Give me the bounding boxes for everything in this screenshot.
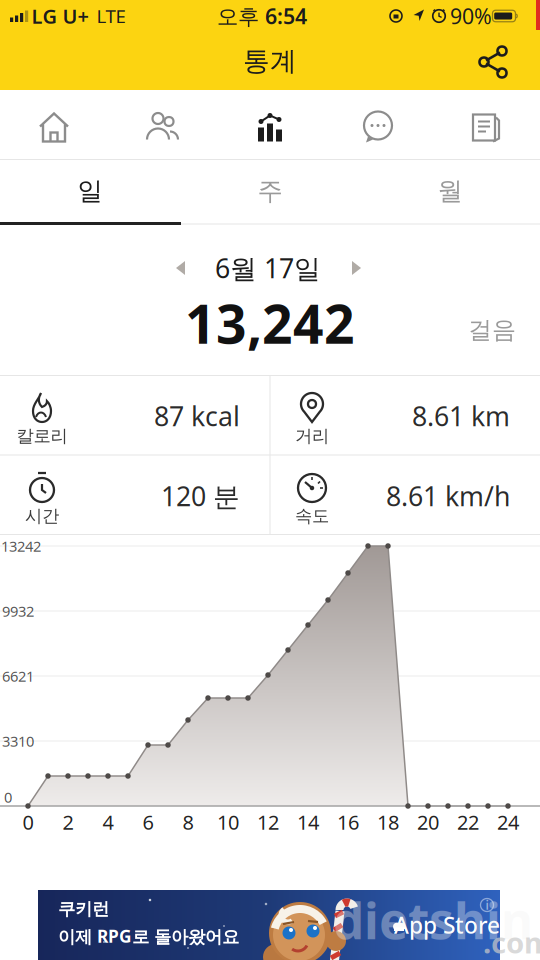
staticText: 8.61 km <box>412 398 510 434</box>
staticText: 120 분 <box>161 478 240 514</box>
staticText: 8.61 km/h <box>386 478 510 514</box>
staticText: LTE <box>96 4 125 28</box>
staticText: 16 <box>337 809 359 835</box>
staticText: 6621 <box>2 666 34 686</box>
staticText: App Store <box>394 910 500 940</box>
staticText: 10 <box>217 809 239 835</box>
staticText: 쿠키런 <box>58 898 109 920</box>
staticText: 거리 <box>295 425 329 447</box>
staticText: 9932 <box>2 601 34 621</box>
button[interactable]: 통계 <box>216 90 324 159</box>
staticText: 시간 <box>25 505 59 527</box>
button[interactable]: 주 <box>180 160 360 222</box>
staticText: 오후 6:54 <box>217 2 307 30</box>
staticText: 0 <box>22 809 33 835</box>
staticText: 걸음 <box>468 315 516 345</box>
staticText: 87 kcal <box>154 398 240 434</box>
staticText: LG U+ <box>31 3 88 29</box>
staticText: 14 <box>297 809 319 835</box>
staticText: 월 <box>437 175 462 206</box>
button[interactable]: 채팅 <box>324 90 432 159</box>
staticText: 통계 <box>243 45 297 77</box>
staticText: 24 <box>497 809 519 835</box>
staticText: 속도 <box>295 505 329 527</box>
staticText: 20 <box>417 809 439 835</box>
staticText: 90% <box>450 2 492 30</box>
staticText: 12 <box>257 809 279 835</box>
staticText: 6월 17일 <box>215 250 321 286</box>
button[interactable]: 홈 <box>0 90 108 159</box>
staticText: .com <box>483 922 540 960</box>
button[interactable]: 쿠키런 광고 <box>38 890 500 960</box>
staticText: 18 <box>377 809 399 835</box>
button[interactable]: 일 <box>0 160 180 222</box>
button[interactable]: 공유 <box>473 40 517 84</box>
staticText: 13242 <box>1 536 41 556</box>
button[interactable]: 뉴스 <box>432 90 540 159</box>
staticText: 22 <box>457 809 479 835</box>
staticText: 이제 RPG로 돌아왔어요 <box>58 925 239 948</box>
button[interactable]: 이전 날짜 <box>162 248 202 288</box>
staticText: 주 <box>257 175 282 206</box>
staticText: 3310 <box>2 731 34 751</box>
button[interactable]: 다음 날짜 <box>335 248 375 288</box>
staticText: i <box>485 897 488 913</box>
staticText: 4 <box>102 809 113 835</box>
staticText: 6 <box>142 809 153 835</box>
staticText: 2 <box>62 809 73 835</box>
staticText: 일 <box>77 175 102 206</box>
button[interactable]: 친구 <box>108 90 216 159</box>
staticText: 칼로리 <box>16 425 67 447</box>
staticText: dietshin <box>333 887 533 953</box>
staticText: 0 <box>4 787 12 807</box>
button[interactable]: 월 <box>360 160 540 222</box>
staticText: 8 <box>182 809 193 835</box>
staticText: 13,242 <box>185 288 355 358</box>
